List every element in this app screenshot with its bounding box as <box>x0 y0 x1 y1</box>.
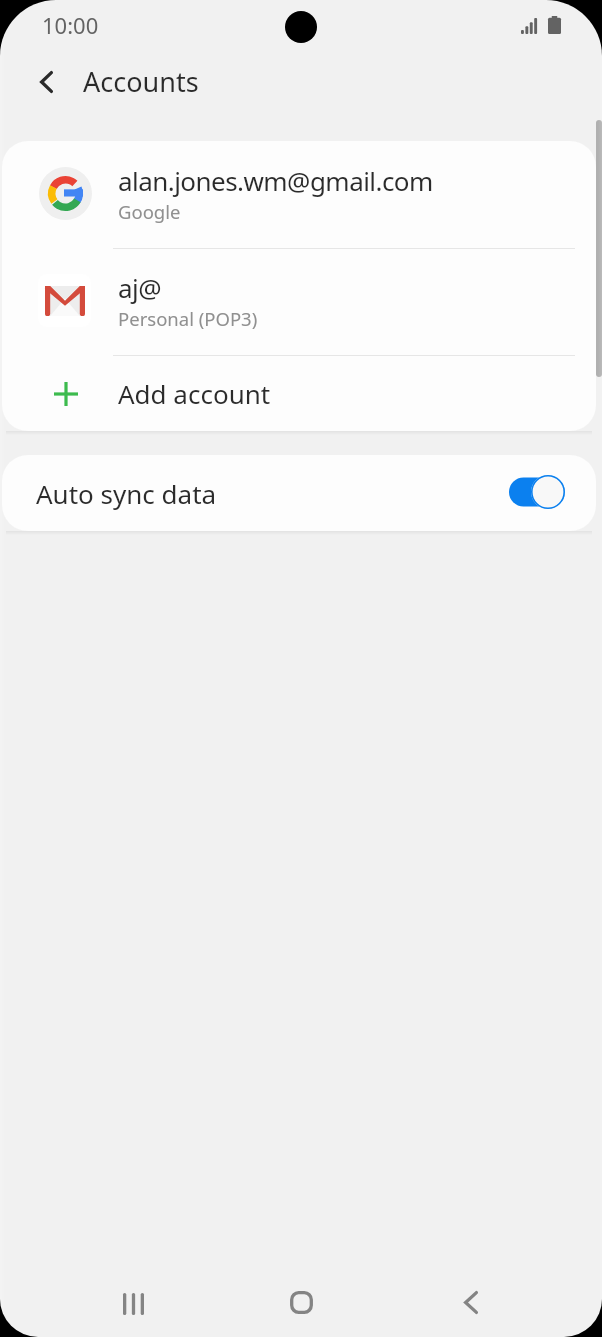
staticText: 10:00 <box>42 10 99 40</box>
staticText: Google <box>118 199 181 224</box>
staticText: Add account <box>118 376 271 411</box>
staticText: aj@ <box>118 270 162 305</box>
button[interactable]: Recent apps <box>97 1272 170 1335</box>
button[interactable]: Auto sync data <box>2 455 596 531</box>
staticText: Auto sync data <box>36 476 217 511</box>
button[interactable]: Navigate up <box>22 58 70 106</box>
button[interactable]: Add account <box>2 356 596 431</box>
staticText: Personal (POP3) <box>118 306 258 331</box>
staticText: alan.jones.wm@gmail.com <box>118 163 433 198</box>
button[interactable]: alan.jones.wm@gmail.com <box>2 141 596 248</box>
staticText: Accounts <box>83 63 199 100</box>
button[interactable]: Back <box>434 1271 507 1334</box>
button[interactable]: aj@ <box>2 249 596 355</box>
button[interactable]: Home <box>265 1271 338 1334</box>
